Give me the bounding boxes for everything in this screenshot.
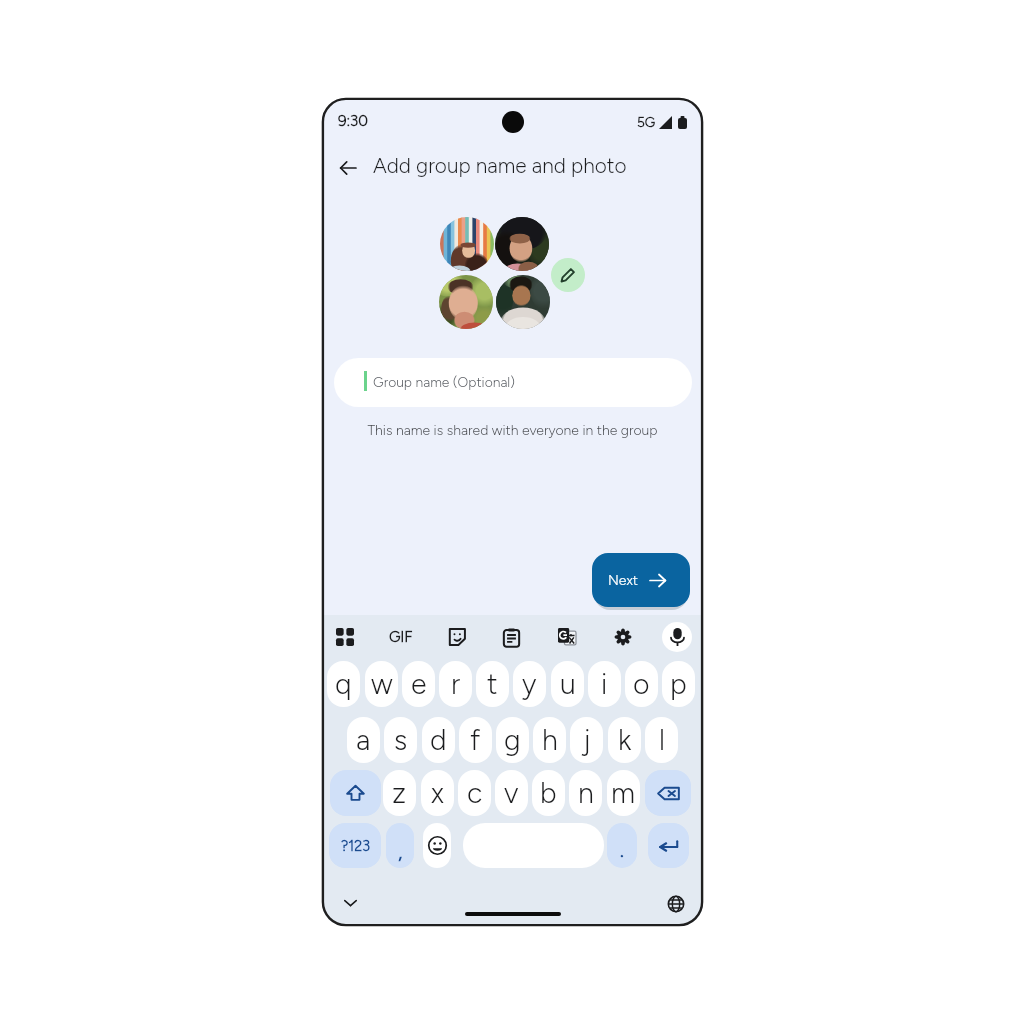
button[interactable]: x <box>421 770 454 816</box>
staticText: e <box>411 667 427 701</box>
button[interactable]: g <box>496 717 529 763</box>
staticText: h <box>542 723 558 757</box>
staticText: f <box>470 723 481 757</box>
staticText: ?123 <box>341 837 370 854</box>
button[interactable]: Shift <box>330 770 381 816</box>
staticText: d <box>430 723 447 757</box>
staticText: b <box>540 776 557 810</box>
staticText: u <box>560 667 576 701</box>
button[interactable]: t <box>476 661 509 707</box>
button[interactable]: Space <box>463 823 604 868</box>
staticText: GIF <box>389 628 413 646</box>
staticText: Next <box>608 572 638 589</box>
button[interactable]: o <box>625 661 658 707</box>
staticText: t <box>487 667 498 701</box>
button[interactable]: Change language <box>663 891 689 917</box>
button[interactable]: y <box>513 661 546 707</box>
button[interactable]: Settings <box>608 622 638 652</box>
staticText: 9:30 <box>338 112 368 130</box>
staticText: 5G <box>637 114 656 130</box>
staticText: j <box>583 723 591 757</box>
button[interactable]: d <box>422 717 455 763</box>
button[interactable]: k <box>608 717 641 763</box>
button[interactable]: c <box>458 770 491 816</box>
button[interactable]: p <box>662 661 695 707</box>
staticText: o <box>633 667 650 701</box>
button[interactable]: s <box>384 717 417 763</box>
button[interactable]: q <box>327 661 360 707</box>
button[interactable]: Back <box>330 150 366 186</box>
button[interactable]: ?123 <box>329 823 381 868</box>
staticText: , <box>398 840 403 864</box>
button[interactable]: GIF <box>386 622 416 652</box>
button[interactable]: Translate <box>552 622 582 652</box>
staticText: . <box>620 838 624 862</box>
button[interactable]: Member photo <box>496 275 550 329</box>
button[interactable]: Next <box>592 553 690 607</box>
staticText: g <box>504 723 521 757</box>
staticText: v <box>504 776 519 810</box>
button[interactable]: a <box>347 717 380 763</box>
button[interactable]: u <box>551 661 584 707</box>
staticText: l <box>659 723 665 757</box>
button[interactable]: Add group name and photo <box>373 153 627 178</box>
button[interactable]: i <box>588 661 621 707</box>
button[interactable]: r <box>439 661 472 707</box>
staticText: s <box>394 723 408 757</box>
staticText: a <box>356 723 371 757</box>
button[interactable]: v <box>495 770 528 816</box>
button[interactable]: e <box>402 661 435 707</box>
staticText: z <box>392 776 407 810</box>
button[interactable]: Hide keyboard <box>336 889 364 917</box>
staticText: m <box>611 776 636 810</box>
button[interactable]: Emoji <box>423 823 451 868</box>
button[interactable]: f <box>459 717 492 763</box>
button[interactable]: m <box>607 770 640 816</box>
button[interactable]: Member photo <box>495 217 549 271</box>
staticText: n <box>578 776 594 810</box>
button[interactable]: Member photo <box>440 217 494 271</box>
button[interactable]: , <box>386 823 414 868</box>
staticText: y <box>522 667 537 701</box>
button[interactable]: Clipboard <box>496 622 526 652</box>
staticText: Group name (Optional) <box>373 374 515 391</box>
staticText: i <box>601 667 608 701</box>
button[interactable]: b <box>532 770 565 816</box>
button[interactable]: w <box>365 661 398 707</box>
staticText: q <box>335 667 352 701</box>
button[interactable]: Edit group photo <box>551 258 585 292</box>
button[interactable]: z <box>383 770 416 816</box>
button[interactable]: Apps <box>330 622 360 652</box>
button[interactable]: Backspace <box>645 770 691 816</box>
button[interactable]: Voice input <box>662 622 692 652</box>
staticText: c <box>467 776 483 810</box>
staticText: w <box>371 667 393 701</box>
button[interactable]: n <box>569 770 602 816</box>
button[interactable]: h <box>533 717 566 763</box>
button[interactable]: l <box>645 717 678 763</box>
button[interactable]: Member photo <box>439 275 493 329</box>
staticText: k <box>618 723 632 757</box>
button[interactable]: . <box>607 823 637 868</box>
button[interactable]: Stickers <box>442 622 472 652</box>
staticText: This name is shared with everyone in the… <box>322 422 703 439</box>
staticText: x <box>431 776 444 810</box>
button[interactable]: Group name (Optional) <box>334 358 692 407</box>
staticText: p <box>670 667 687 701</box>
button[interactable]: j <box>570 717 603 763</box>
staticText: r <box>451 667 461 701</box>
button[interactable]: Enter <box>648 823 689 868</box>
